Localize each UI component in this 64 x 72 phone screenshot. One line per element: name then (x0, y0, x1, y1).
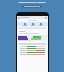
button[interactable]: Stat 1 (31, 23, 35, 26)
button[interactable]: Stat 2 (39, 23, 43, 26)
button[interactable] (18, 36, 47, 38)
button[interactable] (20, 50, 45, 51)
button[interactable] (19, 30, 46, 34)
button[interactable] (18, 38, 47, 40)
button[interactable] (20, 52, 45, 53)
button[interactable]: management tool (24, 5, 40, 8)
staticText: management tool (24, 5, 40, 8)
button[interactable] (20, 48, 45, 49)
staticText: ANCHOR CLOUD SERVICE (18, 1, 46, 4)
button[interactable] (20, 54, 45, 55)
button[interactable]: Stat 0 (23, 23, 27, 26)
button[interactable]: Menu (17, 16, 48, 19)
